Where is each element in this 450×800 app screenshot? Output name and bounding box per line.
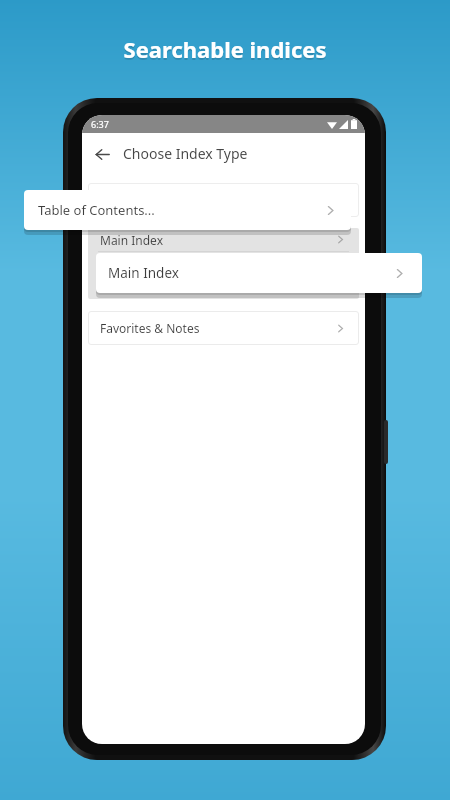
button[interactable] xyxy=(88,252,359,275)
staticText: Main Index xyxy=(108,264,179,282)
staticText: Choose Index Type xyxy=(123,144,248,163)
staticText: Main Index xyxy=(100,232,163,248)
button[interactable]: Favorites & Notes xyxy=(88,311,359,345)
button[interactable]: Main Index xyxy=(96,253,422,293)
staticText: Box Index xyxy=(100,280,157,296)
button[interactable] xyxy=(88,183,359,217)
staticText: Searchable indices xyxy=(0,36,450,66)
staticText: 6:37 xyxy=(91,118,109,130)
button[interactable]: Box Index xyxy=(88,276,359,299)
staticText: Searchable indices xyxy=(0,34,450,64)
button[interactable]: Table of Contents... xyxy=(24,190,351,230)
staticText: Table of Contents... xyxy=(38,201,155,219)
button[interactable]: Back xyxy=(89,141,115,167)
button[interactable]: Main Index xyxy=(88,228,359,251)
staticText: Favorites & Notes xyxy=(100,320,200,336)
